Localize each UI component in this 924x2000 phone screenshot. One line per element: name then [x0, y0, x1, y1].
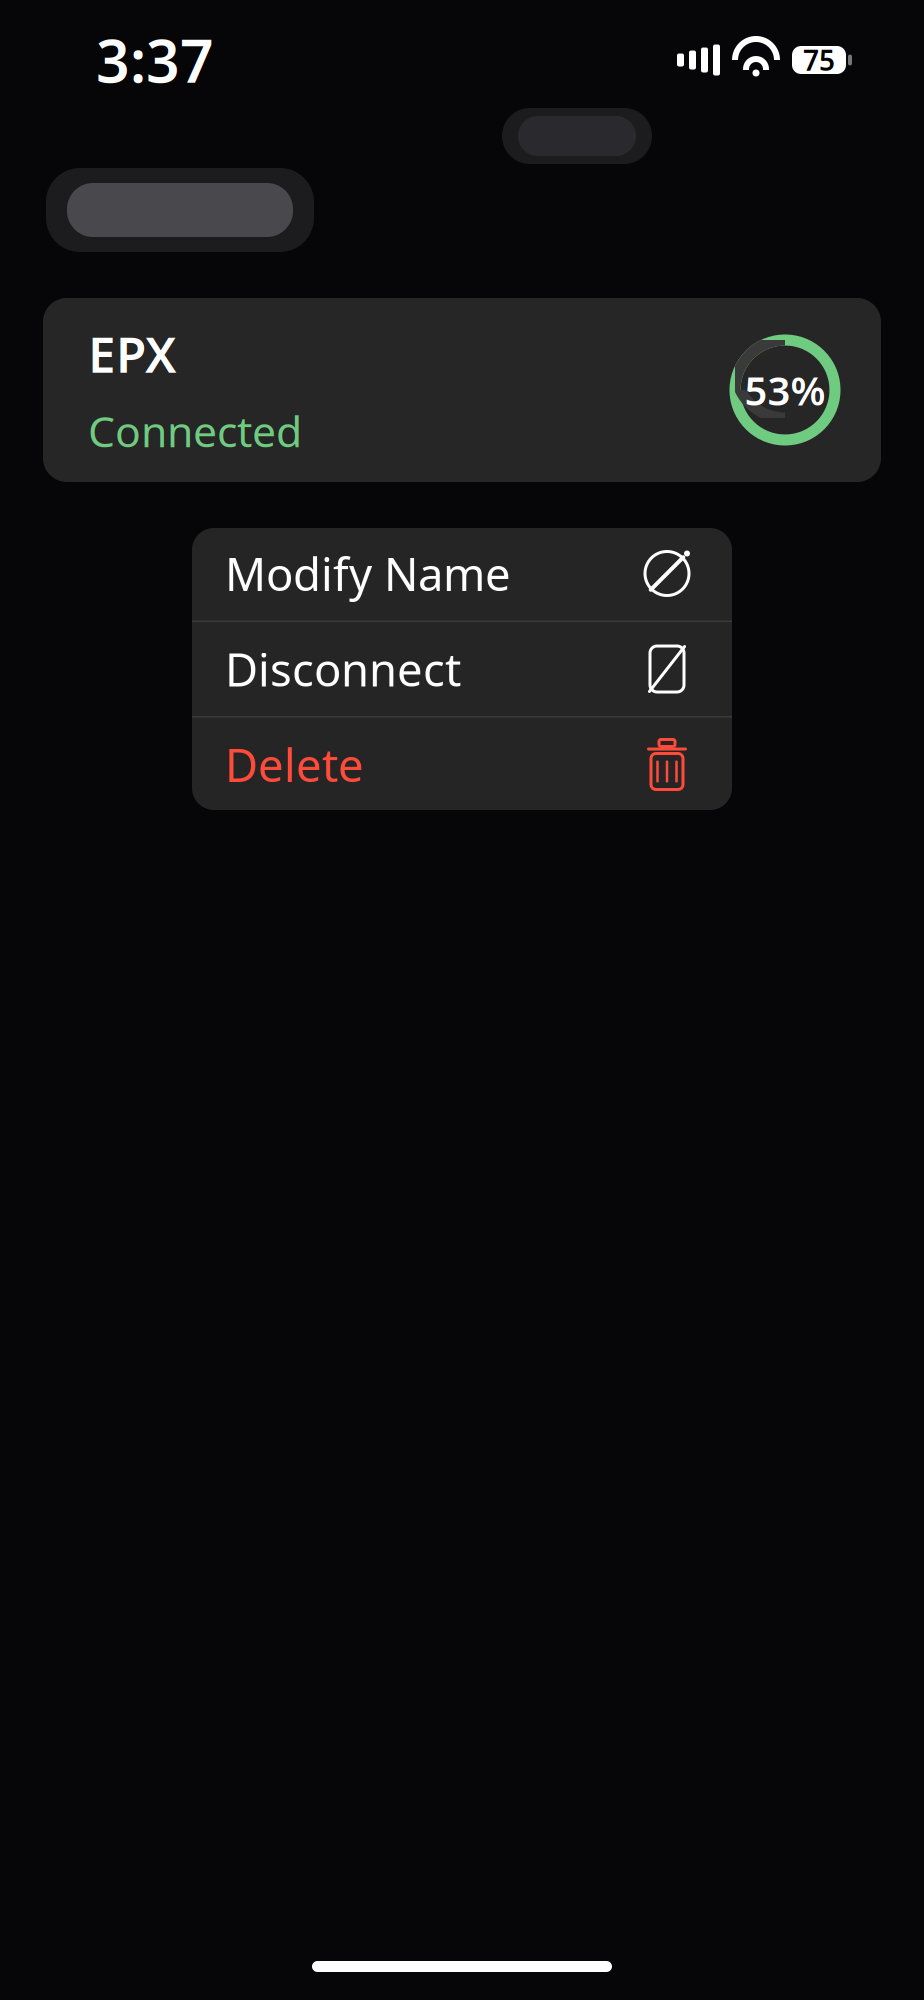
- staticText: EPX: [88, 321, 176, 386]
- staticText: Modify Name: [225, 543, 511, 604]
- staticText: Delete: [225, 734, 364, 795]
- staticText: 3:37: [96, 21, 214, 99]
- button[interactable]: Disconnect: [192, 622, 732, 716]
- button[interactable]: Modify Name: [192, 526, 732, 620]
- staticText: 53%: [744, 363, 825, 416]
- staticText: Connected: [88, 402, 302, 459]
- button[interactable]: EPX: [43, 298, 881, 482]
- staticText: 75: [803, 41, 835, 79]
- staticText: Disconnect: [225, 639, 461, 699]
- button[interactable]: Delete: [192, 717, 732, 811]
